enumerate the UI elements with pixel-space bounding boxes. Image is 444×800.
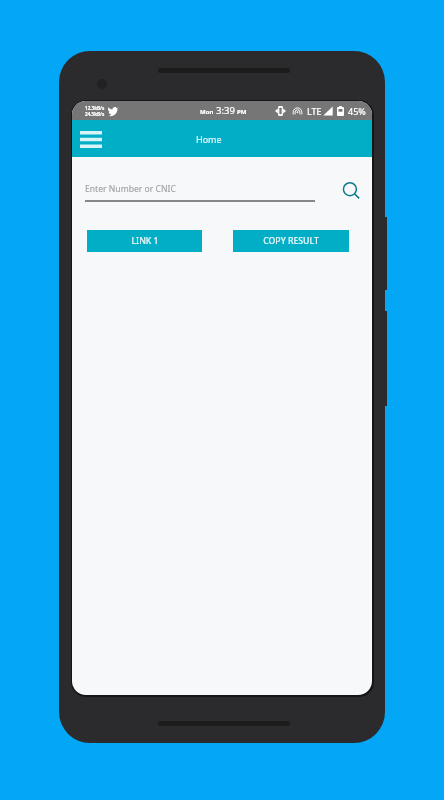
staticText: Home bbox=[196, 133, 222, 145]
staticText: LINK 1 bbox=[131, 235, 159, 247]
staticText: 45% bbox=[348, 105, 366, 117]
staticText: LTE bbox=[307, 105, 322, 117]
staticText: COPY RESULT bbox=[263, 235, 319, 247]
button[interactable]: LINK 1 bbox=[87, 230, 202, 252]
button[interactable]: COPY RESULT bbox=[233, 230, 349, 252]
button[interactable]: Menu bbox=[74, 124, 108, 154]
button[interactable]: Search bbox=[338, 178, 364, 204]
staticText: 24.5kB/s bbox=[85, 111, 105, 117]
staticText: Enter Number or CNIC bbox=[85, 183, 176, 195]
staticText: PM bbox=[237, 108, 247, 116]
staticText: 3:39 bbox=[216, 104, 235, 117]
staticText: Mon bbox=[200, 108, 214, 116]
staticText: 12.3kB/s bbox=[85, 105, 105, 111]
